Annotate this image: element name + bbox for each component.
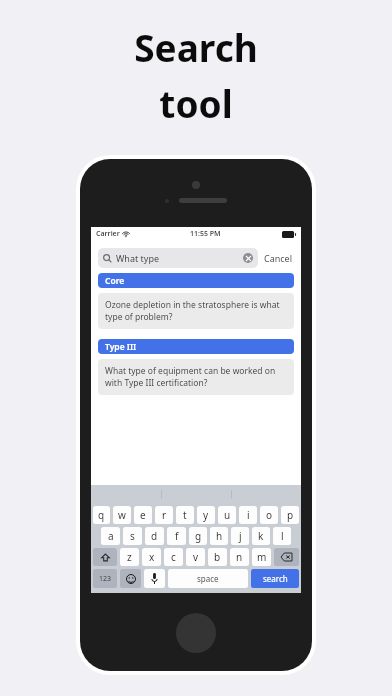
button[interactable]: j: [231, 527, 249, 545]
button[interactable]: Core: [98, 273, 294, 288]
button[interactable]: Home: [176, 613, 216, 653]
button[interactable]: p: [281, 506, 299, 524]
button[interactable]: a: [101, 527, 120, 545]
button[interactable]: f: [167, 527, 186, 545]
staticText: d: [151, 529, 158, 543]
button[interactable]: l: [273, 527, 291, 545]
staticText: t: [183, 508, 187, 522]
staticText: w: [118, 508, 126, 522]
button[interactable]: s: [123, 527, 142, 545]
button[interactable]: v: [186, 548, 205, 566]
button[interactable]: u: [218, 506, 236, 524]
staticText: r: [162, 508, 167, 522]
button[interactable]: g: [189, 527, 207, 545]
staticText: e: [140, 508, 146, 522]
button[interactable]: Dictate: [144, 569, 165, 588]
staticText: y: [203, 508, 209, 522]
staticText: Ozone depletion in the stratosphere is w…: [105, 299, 287, 323]
button[interactable]: b: [208, 548, 227, 566]
staticText: f: [175, 529, 179, 543]
staticText: l: [281, 529, 284, 543]
button[interactable]: 123: [93, 569, 117, 588]
staticText: 123: [99, 574, 112, 584]
staticText: u: [224, 508, 231, 522]
button[interactable]: What type of equipment can be worked on …: [98, 359, 294, 395]
button[interactable]: Clear text: [243, 253, 253, 263]
button[interactable]: d: [145, 527, 164, 545]
staticText: k: [258, 529, 264, 543]
staticText: x: [149, 550, 155, 564]
button[interactable]: n: [230, 548, 249, 566]
button[interactable]: Shift: [93, 548, 117, 566]
staticText: m: [257, 550, 267, 564]
staticText: tool: [159, 78, 233, 128]
button[interactable]: Ozone depletion in the stratosphere is w…: [98, 293, 294, 329]
button[interactable]: Type III: [98, 339, 294, 354]
staticText: q: [98, 508, 105, 522]
staticText: Type III: [105, 341, 137, 353]
staticText: i: [247, 508, 250, 522]
staticText: a: [108, 529, 114, 543]
staticText: What type: [116, 252, 160, 264]
button[interactable]: k: [252, 527, 270, 545]
button[interactable]: search: [251, 569, 299, 588]
button[interactable]: y: [197, 506, 215, 524]
staticText: n: [236, 550, 243, 564]
staticText: Search: [134, 22, 258, 72]
staticText: h: [216, 529, 223, 543]
staticText: g: [195, 529, 202, 543]
staticText: o: [266, 508, 273, 522]
button[interactable]: x: [142, 548, 161, 566]
staticText: space: [197, 573, 219, 584]
staticText: p: [287, 508, 294, 522]
button[interactable]: Cancel: [263, 250, 294, 266]
button[interactable]: Backspace: [274, 548, 299, 566]
staticText: z: [127, 550, 132, 564]
button[interactable]: z: [120, 548, 139, 566]
button[interactable]: space: [168, 569, 248, 588]
staticText: j: [239, 529, 242, 543]
button[interactable]: h: [210, 527, 228, 545]
button[interactable]: o: [260, 506, 278, 524]
button[interactable]: q: [93, 506, 110, 524]
staticText: 11:55 PM: [190, 229, 221, 239]
staticText: v: [193, 550, 199, 564]
staticText: s: [130, 529, 135, 543]
button[interactable]: m: [252, 548, 271, 566]
staticText: c: [171, 550, 176, 564]
staticText: Carrier: [96, 229, 120, 239]
button[interactable]: i: [239, 506, 257, 524]
button[interactable]: What type: [98, 248, 258, 268]
button[interactable]: Emoji: [120, 569, 141, 588]
button[interactable]: c: [164, 548, 183, 566]
button[interactable]: e: [134, 506, 152, 524]
button[interactable]: w: [113, 506, 131, 524]
button[interactable]: t: [176, 506, 194, 524]
staticText: search: [263, 573, 288, 584]
button[interactable]: r: [155, 506, 173, 524]
staticText: What type of equipment can be worked on …: [105, 365, 287, 389]
staticText: Core: [105, 275, 125, 287]
staticText: b: [214, 550, 221, 564]
staticText: Cancel: [264, 252, 293, 264]
